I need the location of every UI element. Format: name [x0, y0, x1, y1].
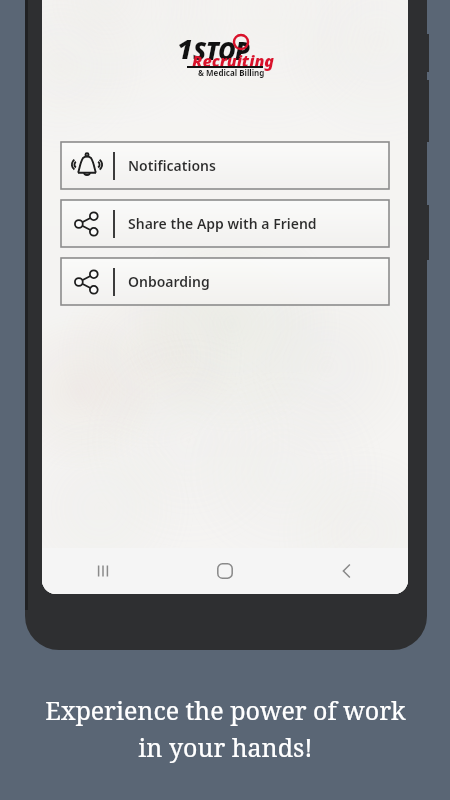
staticText: Experience the power of work [45, 693, 406, 727]
button[interactable]: Share the App with a Friend [61, 200, 389, 247]
staticText: & Medical Billing [198, 67, 265, 78]
button[interactable]: Onboarding [61, 258, 389, 305]
staticText: STOP [193, 34, 250, 67]
button[interactable]: Back [286, 548, 408, 594]
staticText: Notifications [128, 156, 216, 175]
staticText: in your hands! [138, 730, 313, 764]
button[interactable]: Recents [42, 548, 164, 594]
staticText: Share the App with a Friend [128, 214, 317, 233]
staticText: Recruiting [192, 50, 275, 72]
button[interactable]: Home [164, 548, 286, 594]
staticText: Onboarding [128, 272, 210, 291]
staticText: 1 [177, 30, 193, 67]
button[interactable]: Notifications [61, 142, 389, 189]
